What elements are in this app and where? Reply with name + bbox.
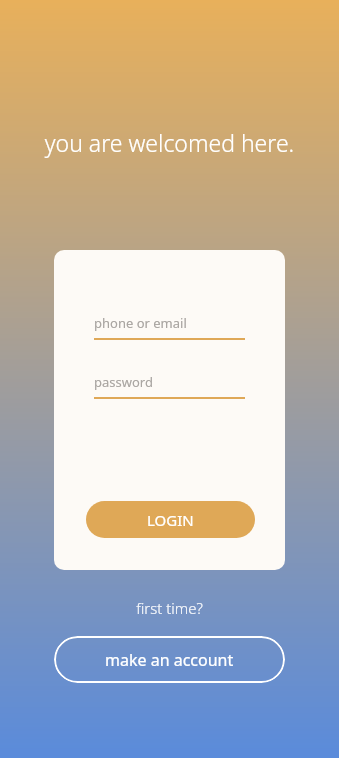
- staticText: first time?: [0, 598, 339, 618]
- button[interactable]: phone or email: [94, 314, 245, 340]
- staticText: LOGIN: [147, 510, 194, 530]
- button[interactable]: LOGIN: [86, 501, 255, 538]
- button[interactable]: make an account: [54, 636, 285, 683]
- staticText: make an account: [105, 649, 234, 671]
- button[interactable]: password: [94, 373, 245, 399]
- staticText: you are welcomed here.: [0, 127, 339, 158]
- staticText: password: [94, 373, 153, 391]
- staticText: phone or email: [94, 314, 187, 332]
